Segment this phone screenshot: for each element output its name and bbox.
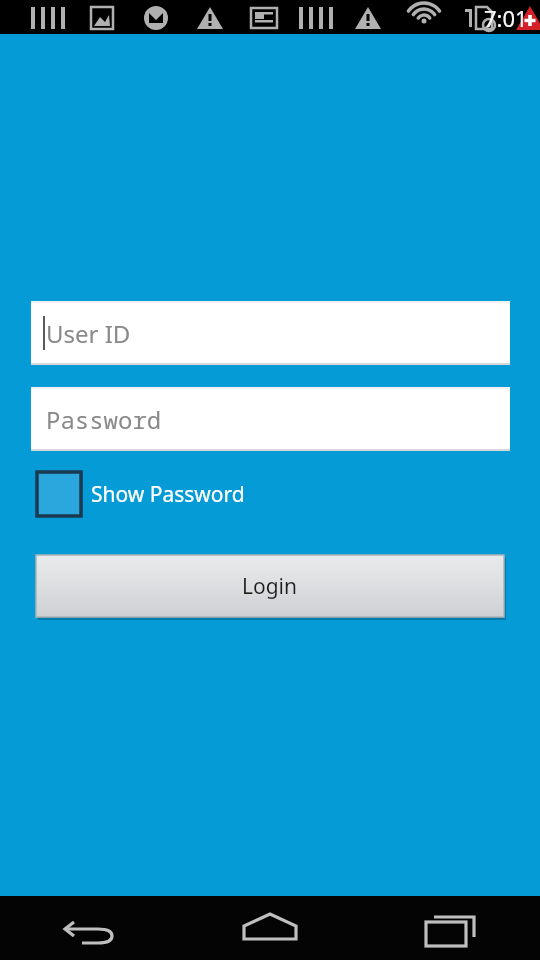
button[interactable]: Back bbox=[0, 896, 180, 960]
staticText: Show Password bbox=[91, 480, 245, 509]
staticText: Password bbox=[46, 403, 162, 436]
button[interactable]: Password bbox=[31, 387, 510, 451]
button[interactable]: Show Password bbox=[37, 472, 245, 516]
button[interactable]: User ID bbox=[31, 301, 510, 365]
staticText: Login bbox=[242, 572, 298, 601]
button[interactable]: Login bbox=[36, 555, 504, 617]
staticText: 7:01 bbox=[484, 3, 528, 33]
button[interactable]: Recent apps bbox=[360, 896, 540, 960]
button[interactable]: Home bbox=[180, 896, 360, 960]
staticText: User ID bbox=[46, 317, 131, 350]
